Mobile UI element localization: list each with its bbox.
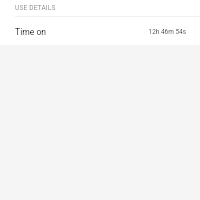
staticText: Time on (15, 27, 47, 37)
button[interactable]: Time on (0, 17, 200, 45)
staticText: USE DETAILS (15, 4, 56, 12)
staticText: 12h 46m 54s (148, 28, 186, 36)
